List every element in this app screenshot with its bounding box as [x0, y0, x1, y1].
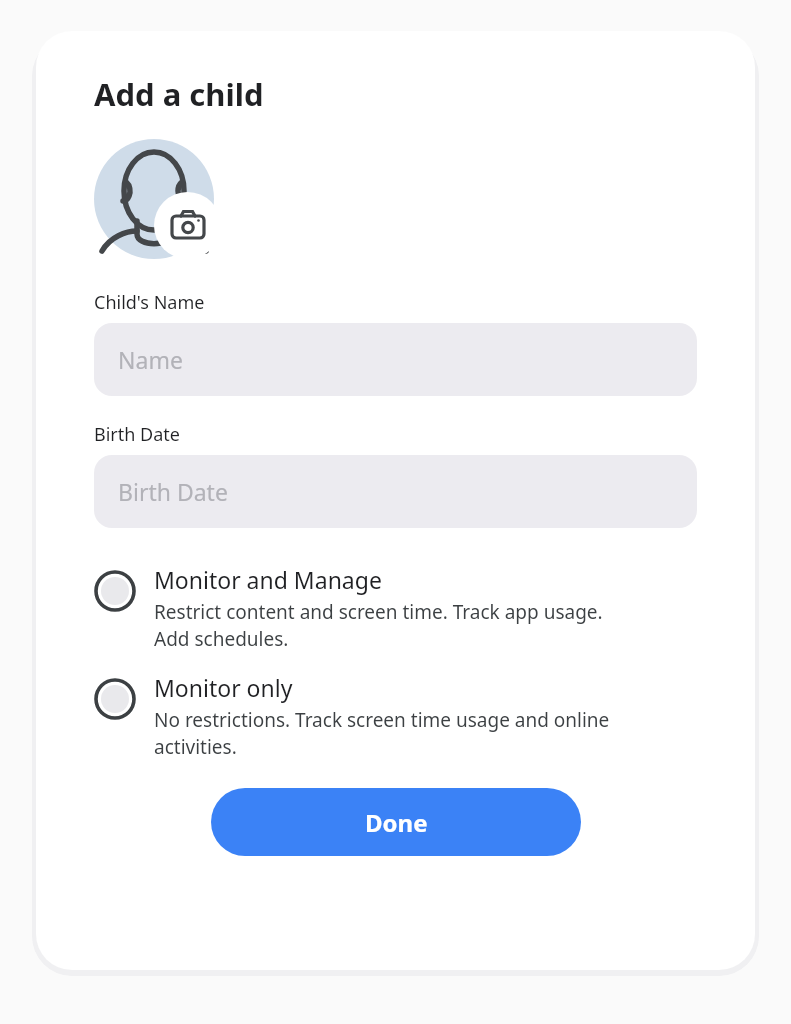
staticText: Name [118, 344, 183, 375]
staticText: Monitor only [154, 672, 293, 703]
button[interactable]: Name [94, 323, 697, 396]
staticText: Birth Date [118, 476, 228, 507]
staticText: Done [365, 806, 428, 839]
staticText: No restrictions. Track screen time usage… [154, 707, 610, 760]
button[interactable]: Monitor only [36, 672, 755, 760]
button[interactable]: Done [211, 788, 581, 856]
button[interactable]: Birth Date [94, 455, 697, 528]
button[interactable]: Change photo [154, 192, 221, 259]
staticText: Child's Name [94, 290, 205, 315]
staticText: Add a child [94, 73, 264, 115]
staticText: Monitor and Manage [154, 564, 382, 595]
button[interactable]: Monitor and Manage [36, 564, 755, 652]
staticText: Birth Date [94, 422, 180, 447]
staticText: Restrict content and screen time. Track … [154, 599, 603, 652]
